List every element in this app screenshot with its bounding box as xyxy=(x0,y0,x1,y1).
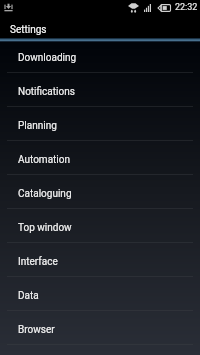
staticText: Planning xyxy=(18,120,57,132)
staticText: Browser xyxy=(18,324,55,336)
staticText: Cataloguing xyxy=(18,188,72,200)
staticText: Automation xyxy=(18,154,70,166)
button[interactable]: Browser xyxy=(0,311,200,345)
staticText: 22:32 xyxy=(175,2,198,13)
staticText: Notifications xyxy=(18,86,75,98)
button[interactable]: Cataloguing xyxy=(0,175,200,209)
staticText: Interface xyxy=(18,256,58,268)
staticText: Data xyxy=(18,290,39,302)
staticText: Downloading xyxy=(18,52,77,64)
button[interactable]: Settings xyxy=(0,14,200,39)
button[interactable]: Notifications xyxy=(0,73,200,107)
button[interactable]: Data xyxy=(0,277,200,311)
staticText: Settings xyxy=(10,24,47,36)
other: Downloading xyxy=(4,3,13,12)
button[interactable]: Planning xyxy=(0,107,200,141)
button[interactable]: Interface xyxy=(0,243,200,277)
staticText: Top window xyxy=(18,222,72,234)
button[interactable]: Automation xyxy=(0,141,200,175)
button[interactable]: Top window xyxy=(0,209,200,243)
button[interactable]: Downloading xyxy=(0,39,200,73)
